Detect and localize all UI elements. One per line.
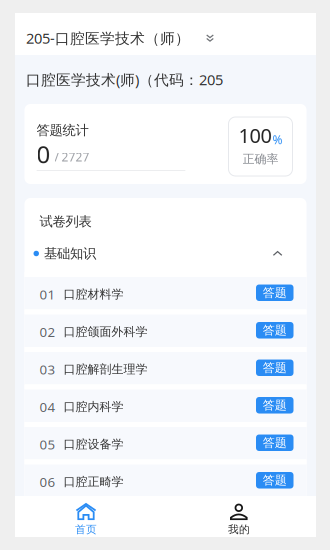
staticText: 基础知识 xyxy=(44,245,96,262)
staticText: 口腔内科学 xyxy=(63,399,123,414)
staticText: 答题 xyxy=(263,360,287,375)
button[interactable]: 01 xyxy=(24,277,306,309)
staticText: 04 xyxy=(39,398,55,416)
staticText: 正确率 xyxy=(242,152,278,166)
staticText: 口腔设备学 xyxy=(63,437,123,452)
staticText: 口腔材料学 xyxy=(63,287,123,302)
staticText: 我的 xyxy=(228,523,250,536)
staticText: 06 xyxy=(39,473,55,491)
button[interactable]: 05 xyxy=(24,427,306,459)
staticText: 05 xyxy=(39,435,55,453)
staticText: 口腔医学技术(师)（代码：205 xyxy=(26,70,223,89)
staticText: 答题 xyxy=(263,285,287,300)
staticText: 答题统计 xyxy=(36,122,88,138)
staticText: 答题 xyxy=(263,398,287,413)
button[interactable]: 03 xyxy=(24,352,306,384)
staticText: 02 xyxy=(39,323,55,341)
staticText: 205-口腔医学技术（师） xyxy=(26,28,190,48)
staticText: 0 xyxy=(36,138,50,170)
staticText: 答题 xyxy=(263,323,287,338)
button[interactable]: 02 xyxy=(24,314,306,347)
button[interactable]: 205-口腔医学技术（师） xyxy=(15,13,316,55)
button[interactable]: 首页 xyxy=(15,496,157,537)
staticText: 首页 xyxy=(75,523,97,536)
staticText: % xyxy=(272,132,282,147)
staticText: 口腔正畸学 xyxy=(63,474,123,489)
button[interactable]: 04 xyxy=(24,389,306,422)
staticText: 答题 xyxy=(263,435,287,450)
button[interactable]: 我的 xyxy=(15,496,310,537)
staticText: / 2727 xyxy=(54,149,89,165)
button[interactable]: 06 xyxy=(24,464,306,497)
staticText: 答题 xyxy=(263,473,287,488)
staticText: 口腔解剖生理学 xyxy=(63,362,147,377)
staticText: 口腔颌面外科学 xyxy=(63,324,147,339)
staticText: 试卷列表 xyxy=(39,213,91,230)
button[interactable]: 基础知识 xyxy=(24,239,306,272)
staticText: 100 xyxy=(238,122,271,149)
staticText: 01 xyxy=(39,285,55,303)
staticText: 03 xyxy=(39,360,55,378)
